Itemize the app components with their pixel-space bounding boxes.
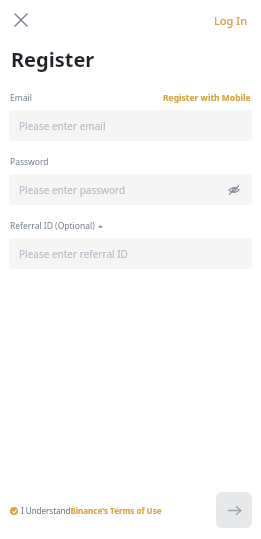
- button[interactable]: I UnderstandBinance's Terms of Use: [10, 501, 216, 520]
- staticText: I UnderstandBinance's Terms of Use: [21, 505, 162, 516]
- button[interactable]: Please enter password: [9, 174, 252, 205]
- staticText: Please enter referral ID: [19, 247, 128, 261]
- staticText: Log In: [214, 13, 248, 28]
- button[interactable]: Referral ID (Optional): [10, 220, 103, 232]
- button[interactable]: Register with Mobile: [163, 92, 251, 104]
- staticText: Referral ID (Optional): [10, 220, 95, 232]
- button[interactable]: Show password: [226, 182, 242, 198]
- button[interactable]: Please enter email: [9, 110, 252, 141]
- staticText: Password: [10, 156, 49, 168]
- button[interactable]: Continue: [216, 492, 252, 528]
- staticText: Register: [11, 46, 95, 73]
- staticText: Email: [10, 92, 32, 104]
- staticText: Register with Mobile: [163, 92, 251, 104]
- button[interactable]: Please enter referral ID: [9, 238, 252, 269]
- staticText: Please enter password: [19, 183, 126, 197]
- button[interactable]: Log In: [210, 9, 252, 32]
- staticText: Please enter email: [19, 119, 106, 133]
- button[interactable]: Close: [9, 8, 33, 32]
